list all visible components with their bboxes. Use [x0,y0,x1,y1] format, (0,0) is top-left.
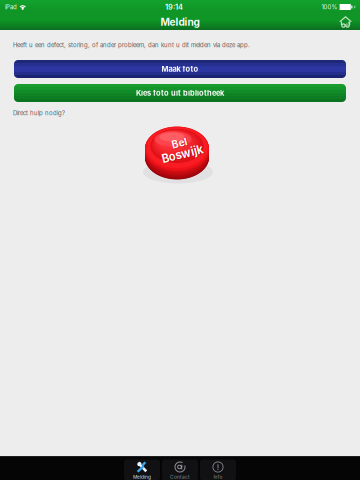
staticText: Melding [160,16,199,28]
staticText: Heeft u een defect, storing, of ander pr… [13,41,250,49]
staticText: Maak foto [161,64,198,73]
button[interactable]: Contact [161,456,199,480]
staticText: Bel [174,137,190,150]
staticText: 19:14 [165,2,183,11]
staticText: iPad [5,3,17,11]
staticText: Bel [173,137,189,149]
staticText: Boswijk [161,148,203,162]
staticText: Melding [133,474,151,480]
staticText: Info [213,474,222,480]
button[interactable]: Bel Boswijk [142,121,218,187]
button[interactable]: Home [335,14,356,30]
button[interactable]: Info [199,456,237,480]
staticText: Boswijk [160,148,202,161]
staticText: Direct hulp nodig? [13,109,65,117]
button[interactable]: Melding [123,456,161,480]
button[interactable]: Kies foto uit bibliotheek [14,84,346,102]
staticText: Contact [170,474,190,480]
button[interactable]: Maak foto [14,60,346,78]
staticText: Kies foto uit bibliotheek [136,88,224,97]
staticText: 100% [322,3,338,11]
